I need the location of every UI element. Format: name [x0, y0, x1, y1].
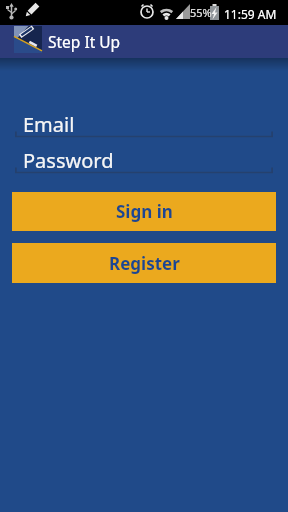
- staticText: Step It Up: [48, 31, 121, 52]
- button[interactable]: Sign in: [12, 192, 276, 231]
- staticText: 11:59 AM: [224, 6, 277, 22]
- button[interactable]: Register: [12, 243, 276, 283]
- staticText: 55%: [190, 5, 212, 20]
- staticText: Email: [23, 111, 75, 138]
- staticText: Sign in: [116, 200, 173, 223]
- staticText: Register: [109, 252, 180, 275]
- staticText: Password: [23, 147, 114, 174]
- button[interactable]: Password: [12, 140, 276, 176]
- button[interactable]: Email: [12, 104, 276, 140]
